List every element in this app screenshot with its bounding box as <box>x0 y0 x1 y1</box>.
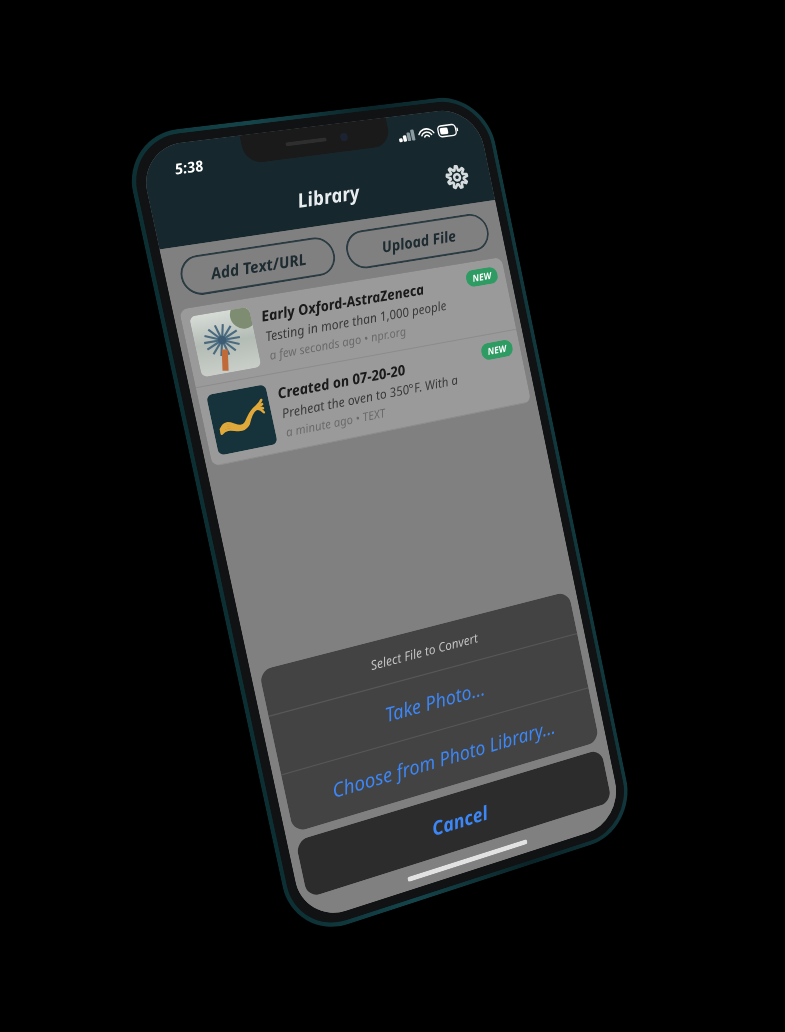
staticText: Testing in more than 1,000 people foun… <box>264 293 469 345</box>
staticText: a few seconds ago • npr.org <box>268 323 408 364</box>
button[interactable]: Created on 07-20-20 <box>196 330 531 466</box>
staticText: Select File to Convert <box>369 629 480 674</box>
staticText: Take Photo… <box>382 675 487 728</box>
staticText: 5:38 <box>172 155 206 179</box>
staticText: Choose from Photo Library… <box>329 714 558 804</box>
button[interactable]: Take Photo… <box>269 634 588 774</box>
staticText: a minute ago • TEXT <box>284 405 387 441</box>
button[interactable]: Settings <box>435 155 479 199</box>
button[interactable]: Choose from Photo Library… <box>281 688 599 833</box>
staticText: Upload File <box>380 225 458 257</box>
button[interactable]: Cancel <box>295 749 612 898</box>
staticText: Add Text/URL <box>209 248 309 284</box>
button[interactable]: Early Oxford-AstraZeneca Coron… <box>179 257 516 387</box>
staticText: Created on 07-20-20 <box>275 360 407 403</box>
button[interactable]: Add Text/URL <box>176 235 339 298</box>
staticText: NEW <box>471 269 493 285</box>
staticText: NEW <box>486 342 508 358</box>
staticText: Library <box>295 179 362 214</box>
button[interactable]: Upload File <box>342 211 492 271</box>
staticText: Early Oxford-AstraZeneca Coron… <box>259 273 465 326</box>
staticText: Preheat the oven to 350°F. With a wood… <box>280 367 484 422</box>
staticText: Cancel <box>429 799 490 842</box>
